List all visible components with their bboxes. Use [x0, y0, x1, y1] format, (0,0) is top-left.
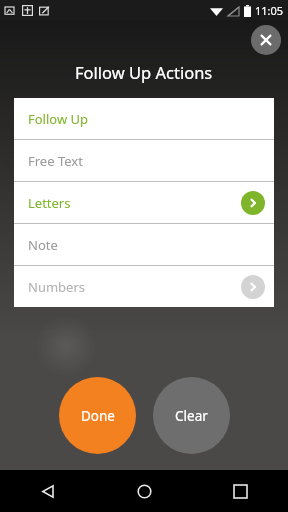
staticText: 11:05 [255, 3, 284, 18]
staticText: Numbers [28, 278, 241, 296]
button[interactable]: Close [251, 25, 281, 55]
staticText: Letters [28, 194, 241, 212]
staticText: Done [81, 407, 115, 425]
button[interactable]: Note [14, 224, 274, 265]
staticText: Follow Up [28, 110, 265, 128]
staticText: Follow Up Actions [75, 61, 213, 83]
button[interactable]: Follow Up [14, 98, 274, 139]
staticText: Note [28, 236, 265, 254]
button[interactable]: Letters [14, 182, 274, 223]
button[interactable]: Recent apps [192, 470, 288, 512]
button[interactable]: Done [59, 377, 136, 454]
button[interactable]: Back [0, 470, 96, 512]
staticText: Clear [175, 407, 208, 425]
button[interactable]: Free Text [14, 140, 274, 181]
button[interactable]: Numbers [14, 266, 274, 307]
button[interactable]: Clear [153, 377, 230, 454]
button[interactable]: Home [96, 470, 192, 512]
staticText: Free Text [28, 152, 265, 170]
